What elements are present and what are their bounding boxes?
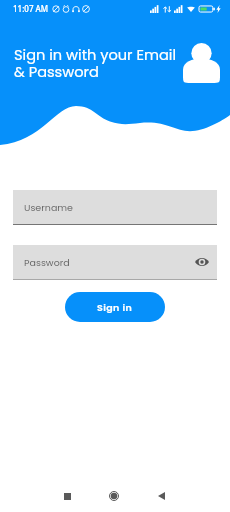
staticText: Username: [24, 201, 73, 214]
staticText: Sign in with your Email & Password: [14, 45, 176, 82]
button[interactable]: Password: [13, 245, 217, 280]
button[interactable]: Back: [144, 479, 178, 512]
button[interactable]: Sign in: [65, 292, 165, 322]
staticText: Password: [24, 256, 70, 269]
staticText: Sign in: [97, 301, 133, 314]
button[interactable]: Home: [97, 479, 131, 512]
button[interactable]: Recent apps: [50, 479, 84, 512]
staticText: 11:07 AM: [13, 3, 49, 14]
other: Show password: [195, 257, 209, 267]
button[interactable]: Username: [13, 190, 217, 225]
